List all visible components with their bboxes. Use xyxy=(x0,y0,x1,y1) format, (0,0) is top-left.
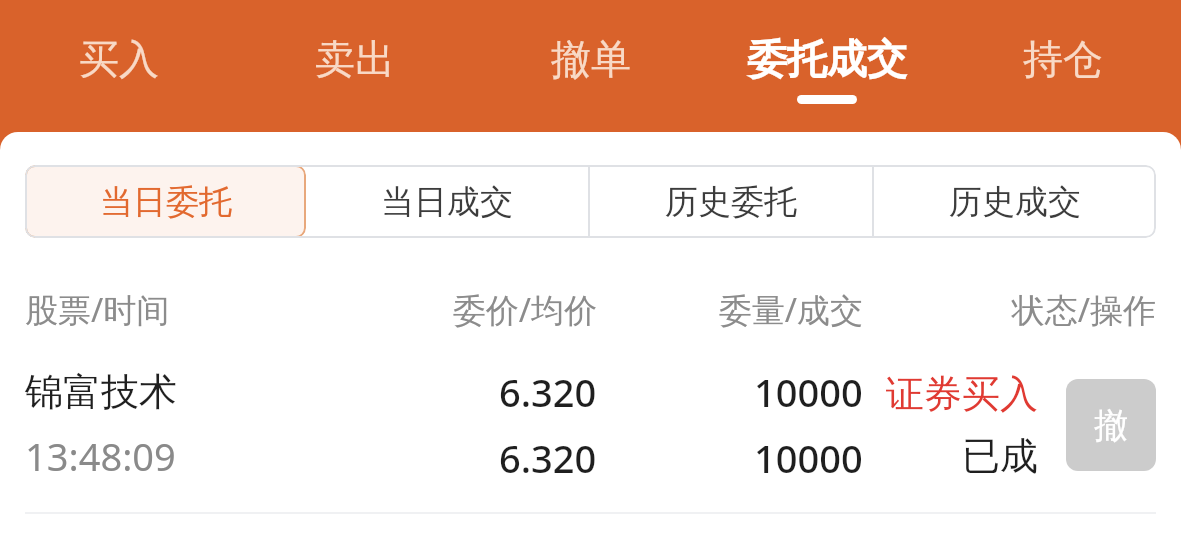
staticText: 委托成交 xyxy=(747,34,907,84)
button[interactable]: 锦富技术 xyxy=(25,366,1156,484)
staticText: 6.320 xyxy=(499,432,597,484)
button[interactable]: 卖出 xyxy=(237,0,473,132)
staticText: 股票/时间 xyxy=(25,287,331,332)
staticText: 持仓 xyxy=(1023,34,1103,84)
staticText: 委价/均价 xyxy=(331,287,597,332)
staticText: 撤单 xyxy=(551,34,631,84)
button[interactable]: 当日成交 xyxy=(306,165,588,238)
staticText: 10000 xyxy=(754,366,863,418)
button[interactable]: 历史委托 xyxy=(590,165,872,238)
staticText: 10000 xyxy=(754,432,863,484)
staticText: 已成 xyxy=(962,432,1038,480)
staticText: 撤 xyxy=(1094,404,1128,447)
staticText: 6.320 xyxy=(499,366,597,418)
button[interactable]: 撤单 xyxy=(473,0,709,132)
staticText: 委量/成交 xyxy=(597,287,863,332)
staticText: 状态/操作 xyxy=(863,287,1156,332)
staticText: 卖出 xyxy=(315,34,395,84)
staticText: 当日成交 xyxy=(381,181,513,223)
button[interactable]: 当日委托 xyxy=(25,165,306,238)
staticText: 买入 xyxy=(79,34,159,84)
staticText: 当日委托 xyxy=(100,181,232,223)
staticText: 13:48:09 xyxy=(25,430,176,482)
button[interactable]: 持仓 xyxy=(945,0,1181,132)
staticText: 锦富技术 xyxy=(25,368,177,416)
staticText: 历史委托 xyxy=(665,181,797,223)
button[interactable]: 委托成交 xyxy=(709,0,945,132)
button[interactable]: 历史成交 xyxy=(874,165,1156,238)
button[interactable]: 买入 xyxy=(0,0,237,132)
button[interactable]: 撤单 xyxy=(1066,379,1156,471)
staticText: 证券买入 xyxy=(886,370,1038,418)
staticText: 历史成交 xyxy=(949,181,1081,223)
